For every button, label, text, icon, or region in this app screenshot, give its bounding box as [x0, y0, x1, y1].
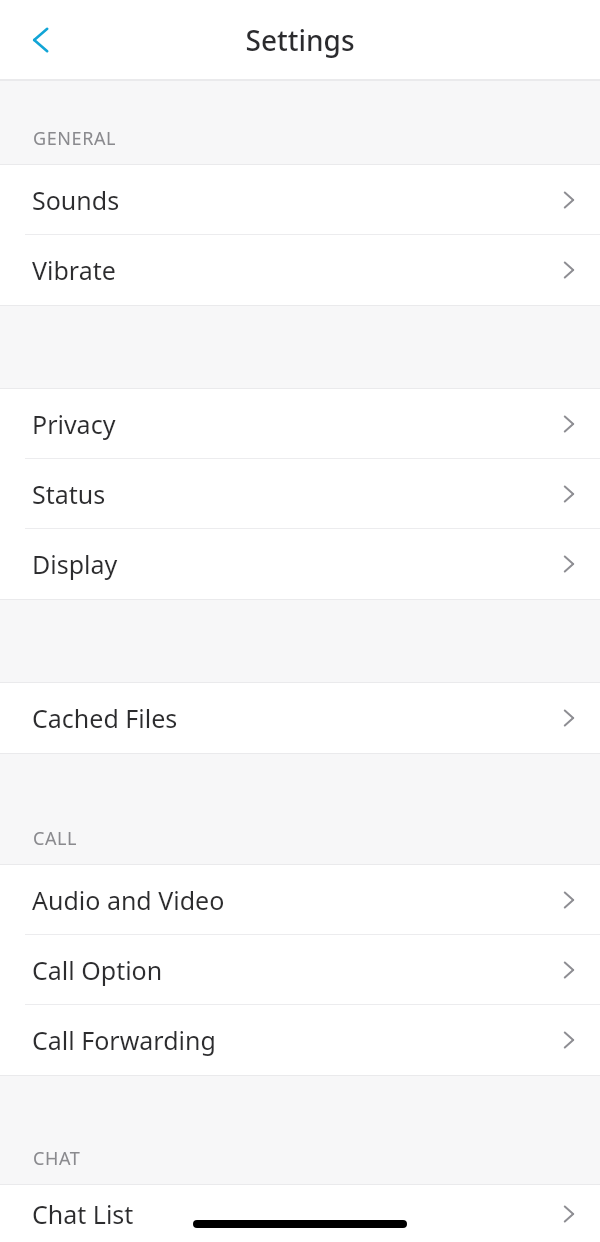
button[interactable]: Privacy [0, 389, 600, 459]
staticText: Display [32, 547, 118, 581]
staticText: GENERAL [33, 126, 117, 151]
button[interactable]: Back [18, 16, 66, 64]
staticText: Settings [245, 21, 355, 59]
staticText: Cached Files [32, 701, 178, 735]
staticText: Chat List [32, 1197, 134, 1231]
button[interactable]: Vibrate [0, 235, 600, 305]
staticText: Privacy [32, 407, 116, 441]
button[interactable]: Call Option [0, 935, 600, 1005]
button[interactable]: Sounds [0, 165, 600, 235]
staticText: Call Option [32, 953, 163, 987]
button[interactable]: Display [0, 529, 600, 599]
staticText: Audio and Video [32, 883, 225, 917]
staticText: Call Forwarding [32, 1023, 216, 1057]
staticText: Status [32, 477, 106, 511]
button[interactable]: Chat List [0, 1185, 600, 1242]
button[interactable]: Call Forwarding [0, 1005, 600, 1075]
staticText: CALL [33, 826, 78, 851]
button[interactable]: Cached Files [0, 683, 600, 753]
staticText: Vibrate [32, 253, 116, 287]
button[interactable]: Status [0, 459, 600, 529]
button[interactable]: Audio and Video [0, 865, 600, 935]
staticText: CHAT [33, 1146, 81, 1171]
staticText: Sounds [32, 183, 120, 217]
